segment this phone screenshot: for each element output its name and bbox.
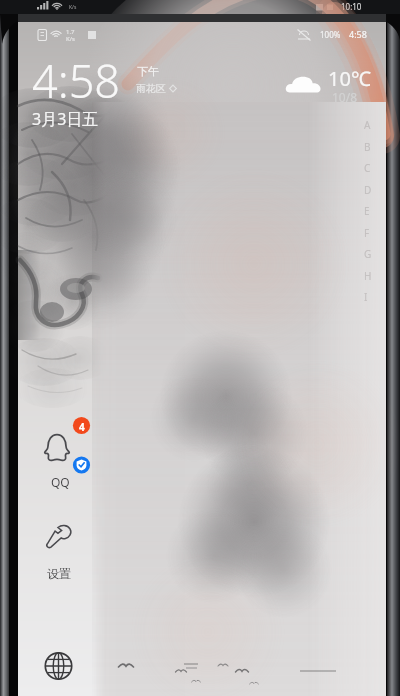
staticText: 100%	[320, 29, 341, 40]
staticText: D	[364, 183, 372, 197]
staticText: F	[364, 226, 370, 240]
staticText: A	[364, 118, 371, 132]
staticText: E	[364, 204, 370, 218]
staticText: 设置	[47, 566, 71, 581]
staticText: 10℃	[328, 65, 371, 92]
staticText: C	[364, 161, 371, 175]
staticText: H	[364, 269, 372, 283]
staticText: G	[364, 247, 372, 261]
staticText: 3月3日五	[32, 108, 99, 130]
staticText: I	[364, 290, 368, 304]
staticText: 4	[79, 420, 85, 434]
button[interactable]: Browser	[41, 649, 76, 684]
button[interactable]: 设置	[27, 512, 91, 588]
staticText: 4:58	[32, 50, 121, 111]
button[interactable]: 4	[27, 420, 91, 500]
staticText: 1.7 K/s	[66, 28, 75, 43]
staticText: K/s	[69, 4, 77, 11]
staticText: 10/8	[332, 89, 358, 105]
staticText: 下午	[137, 64, 159, 78]
staticText: 10:10	[341, 1, 362, 12]
staticText: 4:58	[349, 28, 367, 40]
staticText: 雨花区	[136, 82, 166, 95]
staticText: B	[364, 140, 371, 154]
staticText: QQ	[51, 474, 70, 490]
